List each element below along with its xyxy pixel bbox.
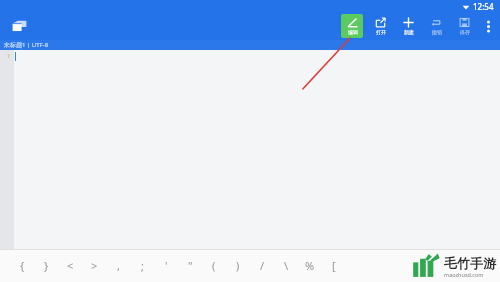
staticText: 保存 xyxy=(460,29,470,35)
staticText: \ xyxy=(284,258,289,273)
button[interactable]: 编辑 xyxy=(338,13,366,39)
staticText: % xyxy=(305,258,315,273)
staticText: 毛竹手游 xyxy=(444,255,496,271)
staticText: / xyxy=(260,258,265,273)
button[interactable]: % xyxy=(298,249,322,282)
button[interactable]: { xyxy=(10,249,34,282)
staticText: maozhusd.com xyxy=(444,271,484,278)
button[interactable]: ' xyxy=(154,249,178,282)
staticText: ( xyxy=(212,258,216,273)
staticText: ; xyxy=(141,258,144,273)
button[interactable]: Documents xyxy=(6,13,32,39)
staticText: 新建 xyxy=(404,29,414,35)
button[interactable]: 保存 xyxy=(450,13,478,39)
staticText: 编辑 xyxy=(348,29,358,35)
staticText: } xyxy=(44,258,49,273)
staticText: [ xyxy=(332,258,336,273)
button[interactable]: 撤销 xyxy=(422,13,450,39)
button[interactable]: More options xyxy=(478,13,498,39)
staticText: < xyxy=(67,258,74,273)
button[interactable]: ) xyxy=(226,249,250,282)
staticText: , xyxy=(117,258,120,273)
staticText: { xyxy=(20,258,25,273)
button[interactable]: > xyxy=(82,249,106,282)
staticText: 打开 xyxy=(376,29,386,35)
staticText: " xyxy=(188,258,193,273)
button[interactable]: " xyxy=(178,249,202,282)
staticText: ' xyxy=(165,258,168,273)
button[interactable]: } xyxy=(34,249,58,282)
staticText: 撤销 xyxy=(432,29,442,35)
button[interactable]: , xyxy=(106,249,130,282)
button[interactable]: < xyxy=(58,249,82,282)
button[interactable]: ; xyxy=(130,249,154,282)
button[interactable]: [ xyxy=(322,249,346,282)
button[interactable]: \ xyxy=(274,249,298,282)
button[interactable]: 新建 xyxy=(394,13,422,39)
staticText: > xyxy=(91,258,98,273)
staticText: 未标题1 | UTF-8 xyxy=(4,41,49,49)
button[interactable]: / xyxy=(250,249,274,282)
button[interactable]: ( xyxy=(202,249,226,282)
staticText: 1 xyxy=(7,52,11,60)
button[interactable]: 打开 xyxy=(366,13,394,39)
staticText: 12:54 xyxy=(473,1,494,12)
staticText: ) xyxy=(236,258,240,273)
